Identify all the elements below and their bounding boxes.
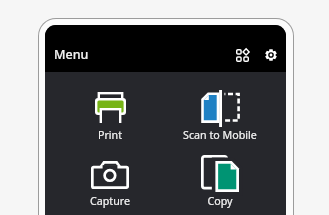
button[interactable]: Settings <box>258 42 284 68</box>
button[interactable]: Print <box>55 84 165 138</box>
button[interactable]: Apps <box>229 42 255 68</box>
button[interactable]: Capture <box>55 153 165 207</box>
staticText: Print <box>55 128 165 143</box>
staticText: Menu <box>54 46 89 63</box>
staticText: Scan to Mobile <box>165 128 275 143</box>
button[interactable]: Scan to Mobile <box>165 82 275 136</box>
staticText: Copy <box>165 194 275 209</box>
button[interactable]: Copy <box>165 147 275 201</box>
staticText: Capture <box>55 194 165 209</box>
